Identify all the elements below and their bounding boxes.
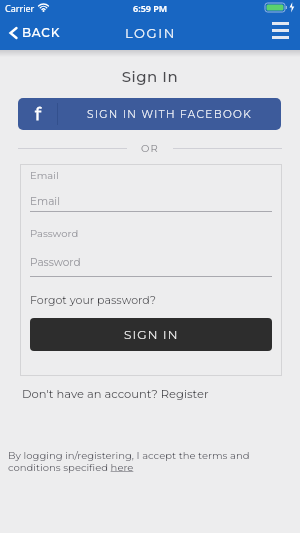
staticText: Email [30, 169, 59, 181]
staticText: 6:59 PM [133, 2, 168, 14]
staticText: BACK [22, 25, 61, 40]
staticText: Password [30, 227, 79, 239]
staticText: f [35, 104, 41, 125]
staticText: OR [141, 142, 159, 154]
staticText: Password [30, 256, 81, 269]
button[interactable] [272, 22, 289, 39]
staticText: LOGIN [125, 25, 176, 41]
button[interactable]: BACK [9, 25, 61, 40]
staticText: SIGN IN WITH FACEBOOK [87, 108, 253, 121]
staticText: Email [30, 195, 61, 208]
button[interactable]: By logging in/registering, I accept the … [8, 449, 250, 473]
staticText: Sign In [0, 67, 300, 85]
button[interactable]: f [18, 98, 281, 130]
button[interactable]: Don't have an account? Register [22, 387, 209, 401]
staticText: SIGN IN [124, 327, 179, 342]
button[interactable]: Forgot your password? [30, 293, 156, 306]
button[interactable]: SIGN IN [30, 318, 272, 351]
staticText: Carrier [5, 2, 35, 14]
